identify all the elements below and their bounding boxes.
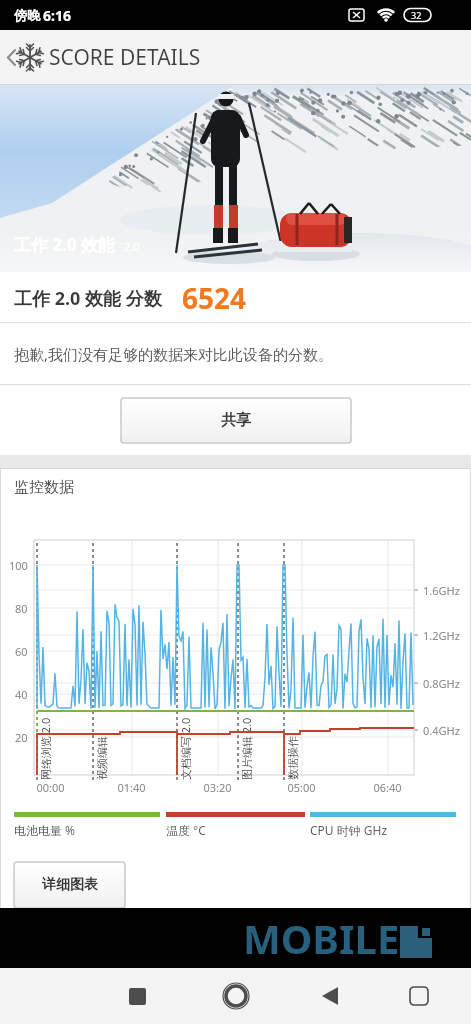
staticText: 6524 — [182, 279, 247, 317]
staticText: 监控数据 — [14, 478, 74, 497]
button[interactable] — [235, 968, 353, 1024]
button[interactable] — [117, 968, 235, 1024]
button[interactable] — [0, 30, 55, 85]
staticText: 共享 — [221, 411, 251, 430]
staticText: SCORE DETAILS — [49, 43, 201, 72]
staticText: 2.0 — [124, 239, 140, 254]
staticText: 抱歉,我们没有足够的数据来对比此设备的分数。 — [14, 344, 334, 364]
staticText: 详细图表 — [42, 876, 98, 894]
button[interactable] — [353, 968, 471, 1024]
staticText: 6:16 — [43, 6, 71, 25]
staticText: MOBILE — [243, 911, 400, 965]
staticText: 32 — [411, 9, 422, 21]
staticText: 工作 2.0 效能 — [14, 233, 116, 256]
staticText: 工作 2.0 效能 分数 — [14, 286, 162, 311]
staticText: 傍晚 — [14, 7, 40, 23]
button[interactable]: 共享 — [121, 398, 351, 443]
button[interactable]: 详细图表 — [14, 862, 125, 908]
